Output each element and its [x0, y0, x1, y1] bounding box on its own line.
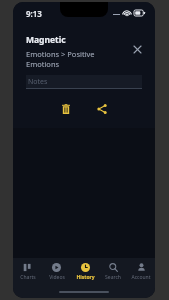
button[interactable]: Videos — [42, 258, 71, 286]
staticText: Videos — [49, 274, 65, 281]
button[interactable]: Search — [99, 258, 127, 286]
staticText: Notes — [28, 77, 48, 87]
button[interactable]: History — [71, 258, 99, 286]
staticText: Search — [105, 274, 121, 281]
button[interactable]: Share — [91, 98, 113, 120]
button[interactable]: Notes — [26, 75, 142, 88]
staticText: Emotions > Positive Emotions — [26, 49, 128, 69]
button[interactable]: Account — [127, 258, 155, 286]
staticText: Magnetic — [26, 34, 66, 46]
button[interactable]: Charts — [13, 258, 42, 286]
staticText: History — [76, 274, 95, 281]
button[interactable]: Close — [128, 40, 146, 58]
staticText: Charts — [20, 274, 36, 281]
button[interactable]: Delete — [55, 98, 77, 120]
staticText: 9:13 — [26, 8, 42, 19]
staticText: Account — [131, 274, 151, 281]
